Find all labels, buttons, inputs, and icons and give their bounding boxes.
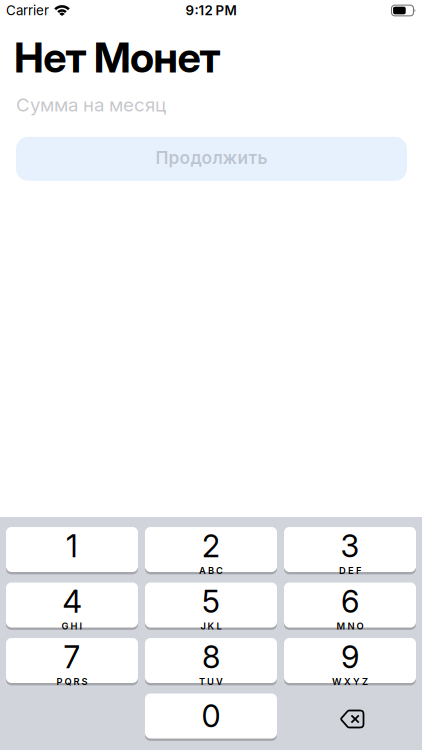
staticText: 0 [201,698,220,734]
staticText: Сумма на месяц [16,94,166,116]
staticText: D E F [339,565,361,576]
staticText: W X Y Z [332,676,368,687]
button[interactable]: 8 [145,638,277,683]
button[interactable]: 2 [145,527,277,572]
button[interactable]: 1 [6,527,138,572]
button[interactable]: 5 [145,582,277,627]
staticText: 9:12 PM [185,3,236,18]
staticText: T U V [199,676,223,687]
button[interactable]: Delete [284,693,416,738]
button[interactable]: Продолжить [16,137,407,181]
staticText: 2 [202,528,220,564]
staticText: 5 [202,583,220,620]
button[interactable]: 3 [284,527,416,572]
staticText: G H I [61,621,82,632]
staticText: Продолжить [155,148,267,168]
staticText: P Q R S [56,676,87,687]
staticText: J K L [200,621,221,632]
staticText: M N O [336,621,363,632]
button[interactable]: 0 [145,693,277,738]
staticText: 9 [341,639,359,675]
staticText: 1 [66,528,78,564]
staticText: Нет Монет [14,33,221,82]
button[interactable]: Сумма на месяц [0,94,422,116]
staticText: 3 [340,528,359,564]
staticText: 4 [62,583,81,620]
staticText: 6 [341,583,359,620]
staticText: 7 [63,639,80,675]
staticText: 8 [202,639,220,675]
button[interactable]: 7 [6,638,138,683]
button[interactable]: 4 [6,582,138,627]
staticText: Carrier [6,3,49,18]
button[interactable]: 6 [284,582,416,627]
button[interactable]: 9 [284,638,416,683]
staticText: A B C [199,565,223,576]
